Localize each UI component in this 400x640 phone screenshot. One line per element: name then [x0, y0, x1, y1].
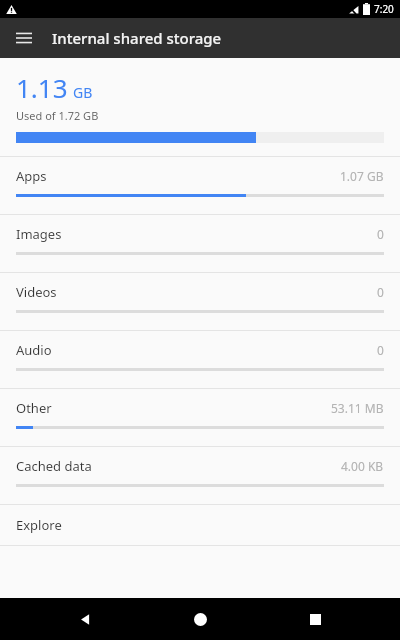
- staticText: Other: [16, 399, 52, 417]
- staticText: 0: [377, 284, 384, 300]
- staticText: 0: [377, 342, 384, 358]
- staticText: 1.07 GB: [340, 168, 384, 184]
- staticText: Apps: [16, 167, 47, 185]
- button[interactable]: Home: [170, 598, 230, 640]
- staticText: Used of 1.72 GB: [16, 108, 99, 123]
- staticText: 7:20: [374, 2, 394, 16]
- button[interactable]: Recent apps: [285, 598, 345, 640]
- button[interactable]: Audio: [0, 331, 400, 389]
- button[interactable]: Other: [0, 389, 400, 447]
- staticText: GB: [73, 83, 93, 102]
- button[interactable]: Videos: [0, 273, 400, 331]
- staticText: Explore: [16, 516, 62, 534]
- staticText: Internal shared storage: [52, 28, 222, 48]
- button[interactable]: Open navigation menu: [10, 24, 38, 52]
- button[interactable]: Apps: [0, 157, 400, 215]
- staticText: Cached data: [16, 457, 92, 475]
- button[interactable]: Back: [55, 598, 115, 640]
- staticText: Videos: [16, 283, 57, 301]
- button[interactable]: Explore: [0, 505, 400, 546]
- staticText: Images: [16, 225, 62, 243]
- staticText: 0: [377, 226, 384, 242]
- button[interactable]: Images: [0, 215, 400, 273]
- staticText: 1.13: [16, 70, 68, 105]
- staticText: Audio: [16, 341, 52, 359]
- staticText: 4.00 KB: [341, 458, 384, 474]
- button[interactable]: Cached data: [0, 447, 400, 505]
- staticText: 53.11 MB: [331, 400, 384, 416]
